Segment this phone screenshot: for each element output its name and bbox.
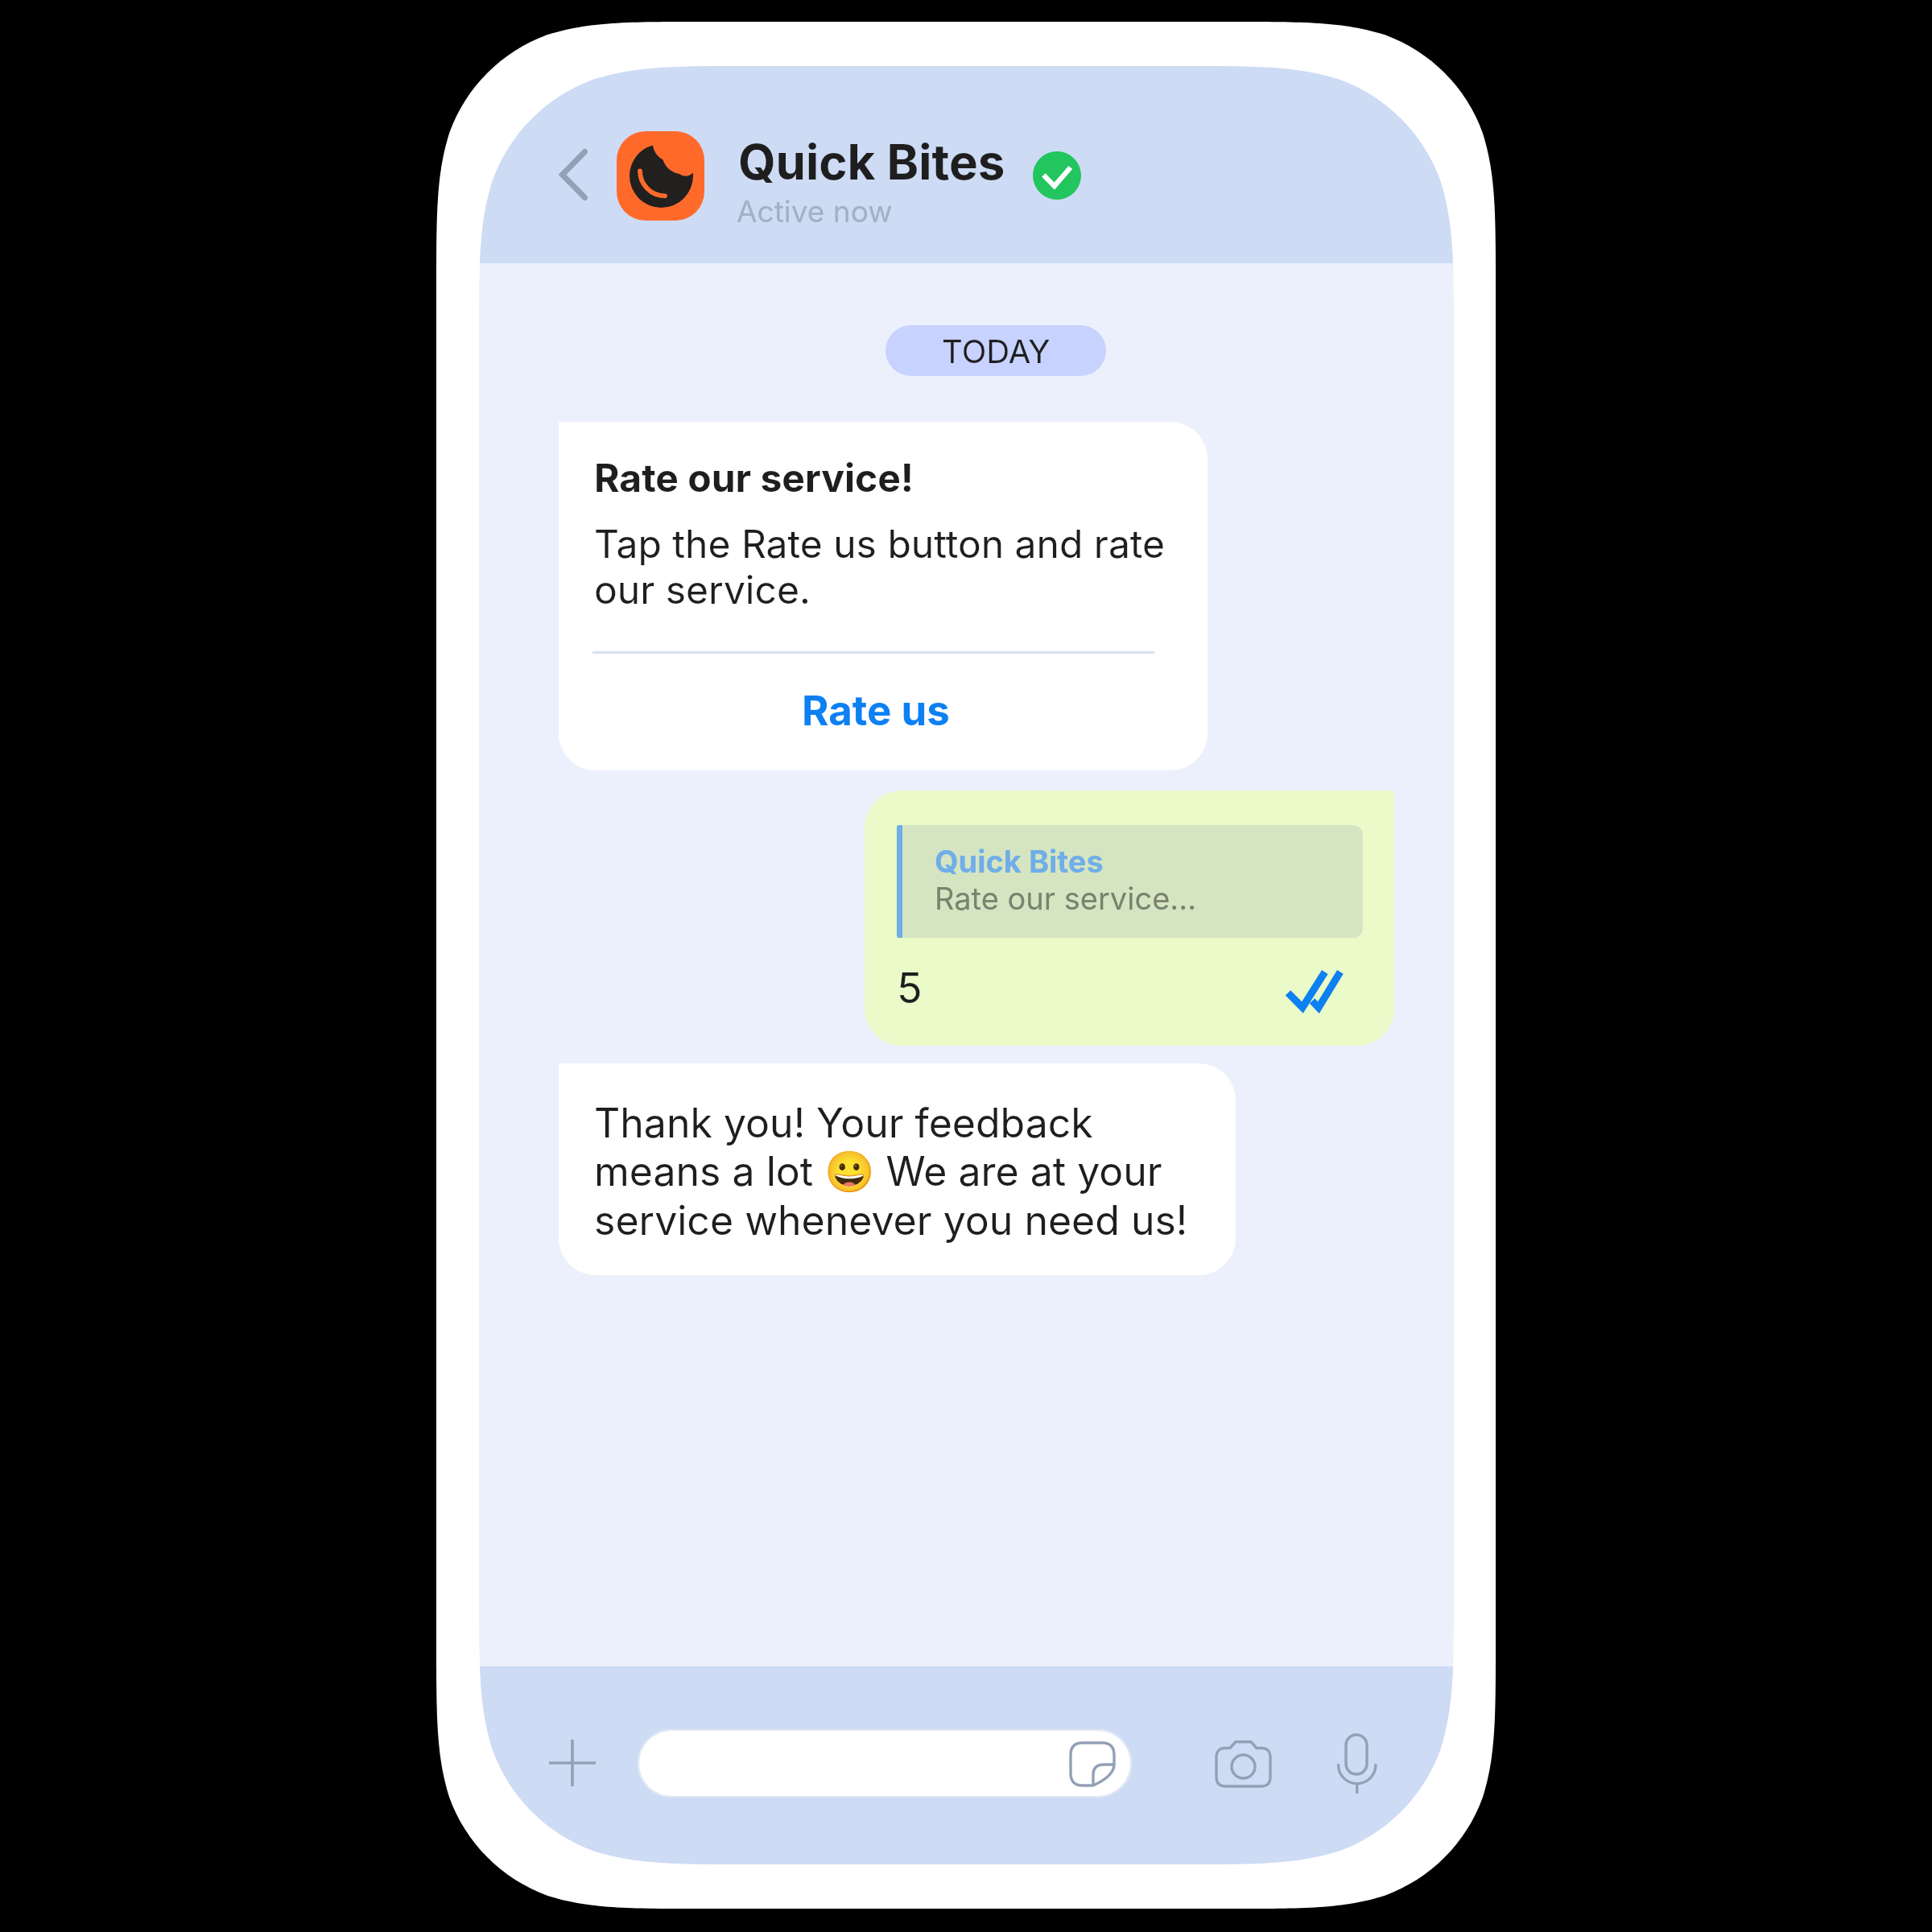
button[interactable]: Thank you! Your feedback means a lot 😀 W…	[559, 1063, 1236, 1275]
button[interactable]: Rate us	[559, 654, 1207, 770]
button[interactable]: Quick Bites	[612, 122, 1022, 231]
staticText: Quick Bites	[935, 843, 1104, 880]
button[interactable]	[638, 1729, 1132, 1798]
staticText: Active now	[737, 193, 893, 229]
button[interactable]: Voice message	[1319, 1717, 1393, 1810]
staticText: Thank you! Your feedback means a lot 😀 W…	[594, 1099, 1206, 1245]
staticText: Rate our service...	[935, 880, 1197, 917]
staticText: 5	[897, 963, 923, 1013]
staticText: TODAY	[942, 332, 1051, 370]
button[interactable]: Add attachment	[532, 1723, 613, 1803]
button[interactable]: Rate our service!	[559, 422, 1207, 770]
button[interactable]: Camera	[1196, 1720, 1290, 1806]
staticText: Rate our service!	[594, 454, 914, 501]
button[interactable]: TODAY	[885, 325, 1106, 376]
staticText: Rate us	[802, 686, 950, 736]
button[interactable]: Back	[539, 130, 607, 220]
button[interactable]: Verified account	[1033, 151, 1081, 200]
button[interactable]: Quick Bites	[865, 791, 1394, 1046]
staticText: Quick Bites	[738, 133, 1005, 192]
staticText: Tap the Rate us button and rate our serv…	[594, 520, 1172, 613]
